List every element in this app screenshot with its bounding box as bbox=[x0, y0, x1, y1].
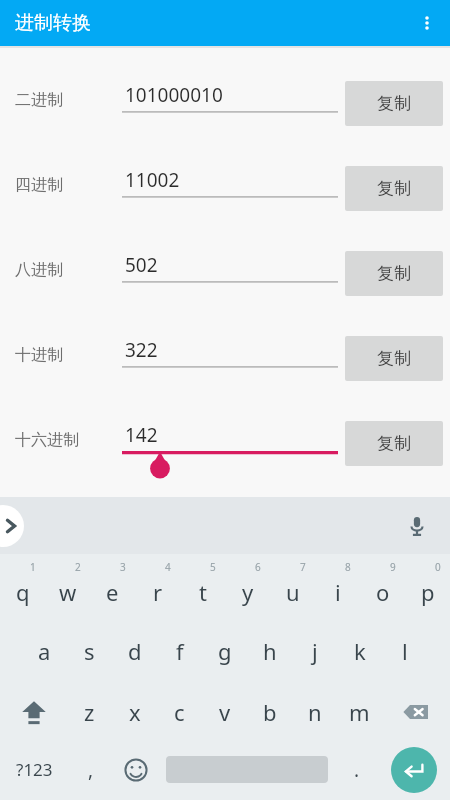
staticText: 4 bbox=[165, 560, 171, 574]
staticText: 2 bbox=[75, 560, 81, 574]
staticText: 复制 bbox=[377, 263, 411, 284]
button[interactable]: s bbox=[67, 620, 112, 682]
button[interactable]: 142 bbox=[122, 420, 338, 470]
button[interactable]: z bbox=[67, 682, 112, 742]
button[interactable]: 5 bbox=[180, 554, 225, 620]
button[interactable]: Emoji bbox=[112, 742, 159, 797]
button[interactable]: 3 bbox=[90, 554, 135, 620]
staticText: n bbox=[308, 697, 322, 727]
button[interactable]: h bbox=[247, 620, 292, 682]
button[interactable]: 502 bbox=[122, 250, 338, 300]
button[interactable]: 8 bbox=[315, 554, 360, 620]
staticText: 复制 bbox=[377, 178, 411, 199]
staticText: j bbox=[312, 636, 318, 666]
button[interactable]: 1 bbox=[0, 554, 45, 620]
staticText: 0 bbox=[435, 560, 441, 574]
button[interactable]: Shift bbox=[0, 682, 67, 742]
button[interactable]: v bbox=[202, 682, 247, 742]
staticText: 101000010 bbox=[125, 82, 223, 108]
staticText: k bbox=[354, 636, 366, 666]
staticText: 8 bbox=[345, 560, 351, 574]
button[interactable]: b bbox=[247, 682, 292, 742]
button[interactable]: 6 bbox=[225, 554, 270, 620]
button[interactable]: m bbox=[337, 682, 382, 742]
button[interactable]: g bbox=[202, 620, 247, 682]
button[interactable]: Space bbox=[159, 742, 335, 797]
staticText: 502 bbox=[125, 252, 158, 278]
button[interactable]: Backspace bbox=[382, 682, 450, 742]
staticText: 十六进制 bbox=[15, 430, 79, 450]
staticText: 复制 bbox=[377, 93, 411, 114]
button[interactable]: 复制 bbox=[345, 336, 443, 381]
staticText: y bbox=[242, 577, 254, 607]
button[interactable]: f bbox=[157, 620, 202, 682]
staticText: m bbox=[349, 697, 370, 727]
button[interactable]: Expand suggestions bbox=[0, 505, 24, 547]
button[interactable]: ?123 bbox=[0, 742, 69, 797]
staticText: 11002 bbox=[125, 167, 180, 193]
button[interactable]: 322 bbox=[122, 335, 338, 385]
staticText: 四进制 bbox=[15, 175, 63, 195]
staticText: 3 bbox=[120, 560, 126, 574]
staticText: e bbox=[106, 577, 119, 607]
staticText: c bbox=[174, 697, 185, 727]
button[interactable]: 复制 bbox=[345, 421, 443, 466]
staticText: , bbox=[88, 757, 94, 783]
staticText: d bbox=[128, 636, 142, 666]
button[interactable]: 复制 bbox=[345, 251, 443, 296]
button[interactable]: Voice input bbox=[397, 506, 437, 546]
staticText: . bbox=[354, 757, 360, 783]
button[interactable]: More options bbox=[404, 0, 450, 46]
button[interactable]: k bbox=[337, 620, 382, 682]
staticText: 6 bbox=[255, 560, 261, 574]
staticText: a bbox=[38, 636, 51, 666]
button[interactable]: 11002 bbox=[122, 165, 338, 215]
button[interactable]: 0 bbox=[405, 554, 450, 620]
staticText: 1 bbox=[30, 560, 36, 574]
button[interactable]: Enter bbox=[378, 742, 450, 797]
button[interactable]: x bbox=[112, 682, 157, 742]
staticText: l bbox=[402, 636, 408, 666]
button[interactable]: , bbox=[69, 742, 112, 797]
staticText: r bbox=[153, 577, 163, 607]
staticText: x bbox=[129, 697, 141, 727]
button[interactable]: 4 bbox=[135, 554, 180, 620]
button[interactable]: l bbox=[382, 620, 427, 682]
staticText: 复制 bbox=[377, 348, 411, 369]
staticText: t bbox=[199, 577, 207, 607]
staticText: g bbox=[218, 636, 232, 666]
staticText: s bbox=[84, 636, 95, 666]
staticText: 二进制 bbox=[15, 90, 63, 110]
staticText: 十进制 bbox=[15, 345, 63, 365]
button[interactable]: 9 bbox=[360, 554, 405, 620]
button[interactable]: 101000010 bbox=[122, 80, 338, 130]
staticText: q bbox=[16, 577, 30, 607]
button[interactable]: n bbox=[292, 682, 337, 742]
staticText: o bbox=[376, 577, 390, 607]
staticText: 7 bbox=[300, 560, 306, 574]
staticText: p bbox=[421, 577, 435, 607]
staticText: h bbox=[263, 636, 277, 666]
staticText: 9 bbox=[390, 560, 396, 574]
staticText: w bbox=[59, 577, 77, 607]
staticText: u bbox=[286, 577, 300, 607]
button[interactable]: 复制 bbox=[345, 166, 443, 211]
staticText: 复制 bbox=[377, 433, 411, 454]
button[interactable]: . bbox=[335, 742, 378, 797]
button[interactable]: d bbox=[112, 620, 157, 682]
button[interactable]: a bbox=[22, 620, 67, 682]
button[interactable]: 复制 bbox=[345, 81, 443, 126]
staticText: i bbox=[335, 577, 341, 607]
button[interactable]: c bbox=[157, 682, 202, 742]
staticText: z bbox=[84, 697, 95, 727]
button[interactable]: 7 bbox=[270, 554, 315, 620]
button[interactable]: j bbox=[292, 620, 337, 682]
button[interactable]: 2 bbox=[45, 554, 90, 620]
staticText: 322 bbox=[125, 337, 158, 363]
staticText: f bbox=[176, 636, 184, 666]
staticText: ?123 bbox=[16, 758, 53, 781]
staticText: 进制转换 bbox=[15, 11, 91, 35]
staticText: 5 bbox=[210, 560, 216, 574]
staticText: b bbox=[263, 697, 277, 727]
staticText: 八进制 bbox=[15, 260, 63, 280]
